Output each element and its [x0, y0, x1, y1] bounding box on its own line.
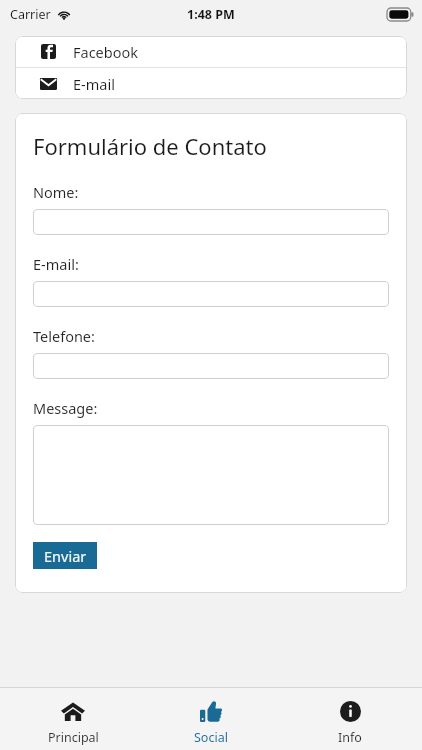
staticText: 1:48 PM — [187, 6, 235, 23]
button[interactable]: Principal — [7, 688, 139, 750]
button[interactable] — [33, 353, 389, 379]
staticText: Formulário de Contato — [33, 131, 267, 161]
staticText: Principal — [48, 729, 99, 746]
staticText: Info — [338, 729, 362, 746]
button[interactable]: Facebook — [15, 36, 407, 67]
button[interactable] — [33, 425, 389, 525]
button[interactable] — [33, 209, 389, 235]
staticText: Carrier — [10, 6, 51, 23]
button[interactable]: Enviar — [33, 542, 97, 569]
staticText: E-mail — [73, 74, 115, 94]
button[interactable]: E-mail — [15, 68, 407, 99]
staticText: Message: — [33, 398, 98, 418]
button[interactable]: Social — [145, 688, 277, 750]
button[interactable] — [33, 281, 389, 307]
staticText: Facebook — [73, 42, 139, 62]
staticText: E-mail: — [33, 254, 79, 274]
staticText: Enviar — [44, 546, 87, 566]
staticText: Social — [194, 729, 228, 746]
button[interactable]: Info — [284, 688, 416, 750]
staticText: Nome: — [33, 182, 79, 202]
staticText: Telefone: — [33, 326, 95, 346]
